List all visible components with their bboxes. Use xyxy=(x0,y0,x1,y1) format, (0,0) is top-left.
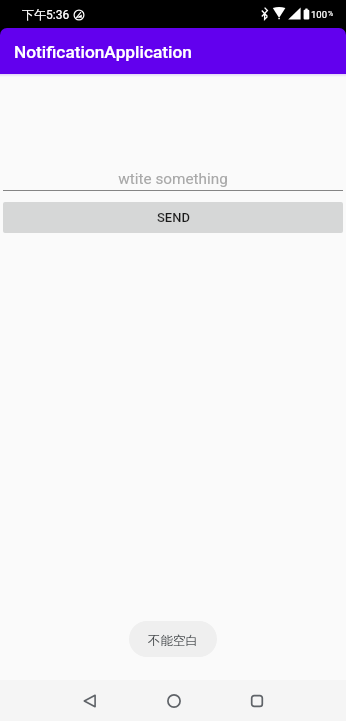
button[interactable]: Recent apps xyxy=(233,680,280,721)
staticText: wtite something xyxy=(118,170,228,188)
button[interactable]: SEND xyxy=(3,202,343,233)
button[interactable]: Home xyxy=(150,680,197,721)
staticText: NotificationApplication xyxy=(14,42,192,62)
staticText: 不能空白 xyxy=(148,633,198,649)
staticText: 下午5:36 xyxy=(22,7,70,22)
staticText: 100 xyxy=(311,9,328,20)
button[interactable]: Back xyxy=(66,680,113,721)
staticText: % xyxy=(328,10,334,18)
staticText: SEND xyxy=(157,210,190,225)
